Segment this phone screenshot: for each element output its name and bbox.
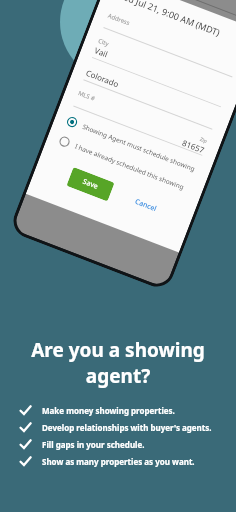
other: Check (20, 456, 31, 467)
button[interactable]: I have already scheduled this showing (59, 136, 191, 194)
staticText: Zip (199, 136, 209, 145)
other: Check (20, 422, 31, 433)
button[interactable]: Save (66, 167, 115, 201)
staticText: I have already scheduled this showing (74, 142, 185, 192)
staticText: 81657 (181, 137, 206, 155)
staticText: Wed Jul 21, 9:00 AM (MDT) (115, 0, 222, 38)
staticText: Make money showing properties. (42, 405, 175, 416)
staticText: Save (81, 177, 100, 192)
other: Check (20, 439, 31, 450)
staticText: Vail (93, 44, 110, 60)
button[interactable]: Check (0, 402, 236, 419)
button[interactable]: Cancel (128, 192, 164, 219)
other: Check (20, 405, 31, 416)
staticText: Colorado (84, 67, 121, 89)
button[interactable]: Check (0, 453, 236, 470)
button[interactable]: Showing Agent must schedule showing (66, 116, 198, 174)
staticText: City (97, 37, 110, 48)
staticText: Develop relationships with buyer's agent… (42, 422, 212, 433)
button[interactable]: Check (0, 419, 236, 436)
staticText: Cancel (133, 197, 159, 214)
staticText: MLS # (77, 89, 97, 103)
staticText: Address (107, 12, 131, 27)
button[interactable]: Check (0, 436, 236, 453)
staticText: Showing Agent must schedule showing (81, 122, 196, 173)
staticText: Are you a showing agent? (6, 337, 230, 389)
staticText: Fill gaps in your schedule. (42, 439, 145, 450)
staticText: Show as many properties as you want. (42, 456, 195, 467)
